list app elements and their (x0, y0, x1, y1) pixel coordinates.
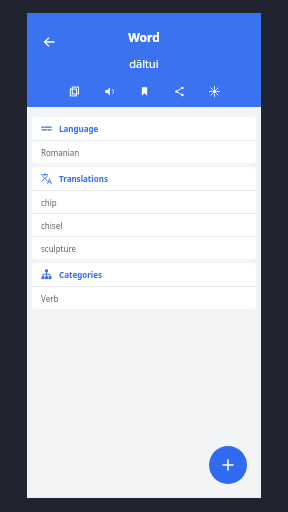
staticText: Word (128, 29, 160, 45)
button[interactable]: More (205, 82, 223, 100)
button[interactable]: Romanian (32, 141, 256, 163)
button[interactable]: Pronounce (100, 82, 118, 100)
staticText: chip (41, 197, 57, 208)
staticText: chisel (41, 220, 63, 231)
staticText: Language (59, 123, 99, 134)
button[interactable]: Verb (32, 287, 256, 309)
button[interactable]: Back (35, 28, 63, 56)
button[interactable]: Translations (32, 167, 256, 190)
button[interactable]: Share (170, 82, 188, 100)
button[interactable]: Language (32, 117, 256, 140)
button[interactable]: chip (32, 191, 256, 213)
button[interactable]: Copy (65, 82, 83, 100)
button[interactable]: Add (209, 446, 247, 484)
staticText: Translations (59, 173, 108, 184)
button[interactable]: sculpture (32, 237, 256, 259)
staticText: dăltui (129, 56, 159, 71)
button[interactable]: chisel (32, 214, 256, 236)
staticText: Romanian (41, 147, 80, 158)
button[interactable]: Categories (32, 263, 256, 286)
staticText: sculpture (41, 243, 77, 254)
staticText: Categories (59, 269, 102, 280)
staticText: Verb (41, 293, 59, 304)
button[interactable]: Bookmark (135, 82, 153, 100)
